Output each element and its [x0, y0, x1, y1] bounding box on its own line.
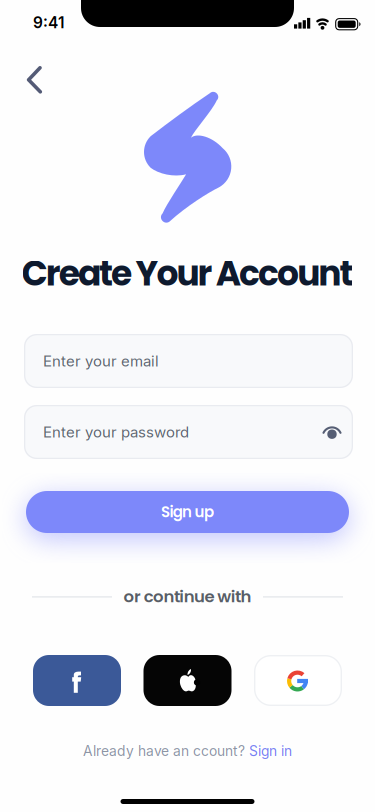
button[interactable]: Enter your email: [24, 334, 353, 388]
staticText: Already have an ccount?: [83, 743, 245, 759]
button[interactable]: Sign up: [26, 491, 349, 533]
button[interactable]: Back: [12, 58, 56, 102]
staticText: Create Your Account: [22, 249, 353, 298]
button[interactable]: Sign in: [249, 743, 292, 759]
staticText: Enter your password: [43, 423, 189, 441]
button[interactable]: Enter your password: [24, 405, 353, 459]
staticText: Sign in: [249, 743, 292, 759]
button[interactable]: Continue with Apple: [143, 655, 231, 706]
staticText: Sign up: [161, 501, 214, 522]
button[interactable]: Continue with Facebook: [33, 655, 121, 706]
button[interactable]: Show password: [310, 410, 354, 454]
staticText: or continue with: [123, 585, 251, 608]
staticText: Enter your email: [43, 352, 159, 370]
button[interactable]: Continue with Google: [254, 655, 342, 706]
staticText: 9:41: [33, 13, 65, 32]
